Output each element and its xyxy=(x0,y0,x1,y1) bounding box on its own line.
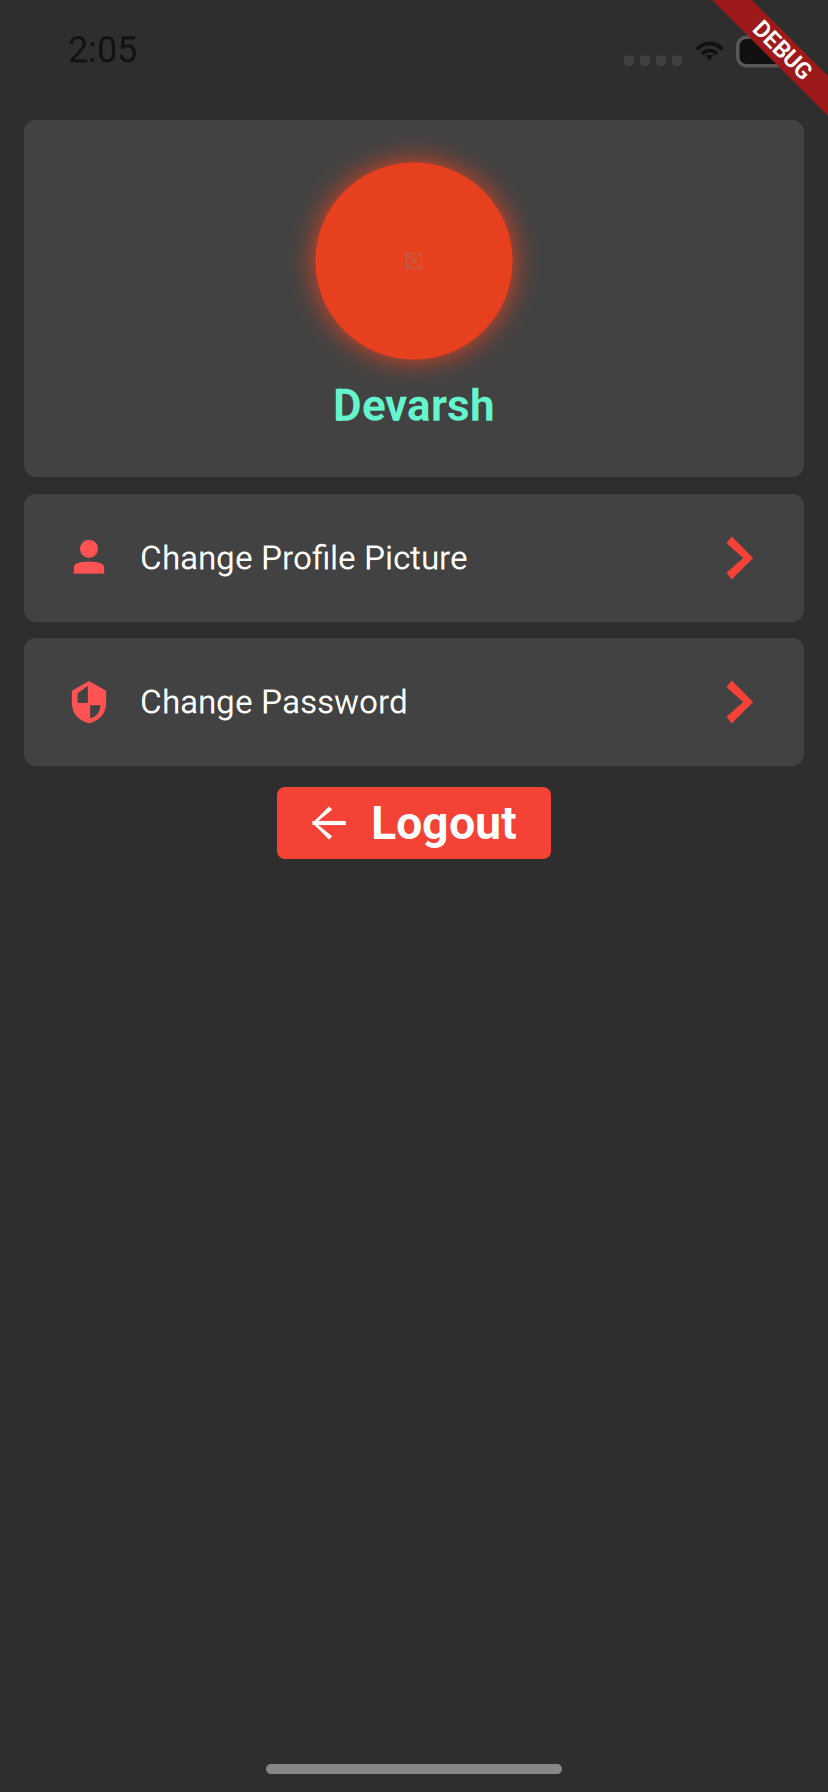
button[interactable]: Change Profile Picture xyxy=(24,494,804,622)
button[interactable]: Logout xyxy=(277,787,551,859)
button[interactable]: Change Password xyxy=(24,638,804,766)
staticText: Change Profile Picture xyxy=(140,538,468,578)
staticText: DEBUG xyxy=(747,35,819,61)
staticText: Change Password xyxy=(140,682,408,722)
staticText: Logout xyxy=(371,796,517,850)
image xyxy=(406,253,422,269)
staticText: Devarsh xyxy=(333,380,495,432)
staticText: 2:05 xyxy=(68,29,137,71)
